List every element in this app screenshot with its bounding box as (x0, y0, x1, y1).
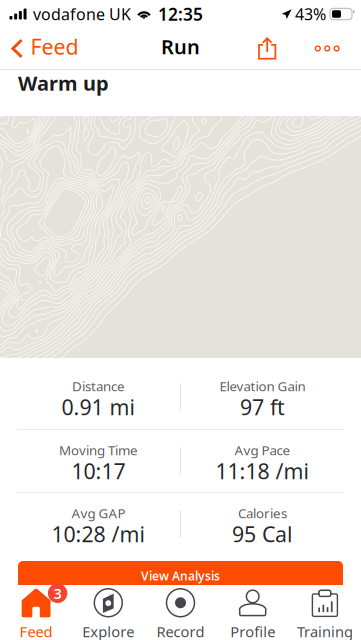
staticText: Distance (72, 377, 125, 395)
staticText: Run (161, 33, 200, 60)
staticText: 10:28 /mi (51, 520, 145, 548)
staticText: 3 (54, 583, 62, 603)
button[interactable]: Profile (217, 585, 289, 640)
button[interactable]: Record (144, 585, 217, 640)
staticText: Warm up (18, 70, 109, 96)
button[interactable]: Explore (72, 585, 144, 640)
staticText: Training (297, 622, 353, 640)
staticText: 43% (295, 3, 326, 25)
staticText: 12:35 (158, 2, 203, 25)
staticText: Record (156, 622, 204, 640)
staticText: vodafone UK (33, 3, 131, 25)
staticText: Avg GAP (71, 504, 125, 522)
button[interactable]: Share (244, 28, 290, 69)
button[interactable]: Feed (0, 28, 86, 69)
button[interactable]: View Analysis (18, 561, 343, 598)
staticText: 95 Cal (232, 520, 293, 548)
staticText: 0.91 mi (61, 393, 135, 421)
staticText: 97 ft (240, 393, 285, 421)
staticText: Feed (30, 32, 78, 61)
staticText: Moving Time (59, 441, 138, 459)
button[interactable]: 3 (0, 585, 72, 640)
button[interactable]: More options (290, 28, 361, 69)
staticText: Avg Pace (234, 441, 290, 459)
staticText: View Analysis (141, 568, 220, 584)
staticText: Calories (238, 504, 287, 522)
staticText: Profile (230, 622, 275, 640)
staticText: Explore (82, 622, 134, 640)
button[interactable]: Training (289, 585, 361, 640)
staticText: Elevation Gain (219, 377, 305, 395)
staticText: 11:18 /mi (215, 457, 309, 485)
staticText: Feed (20, 622, 53, 640)
staticText: 10:17 (71, 457, 125, 485)
